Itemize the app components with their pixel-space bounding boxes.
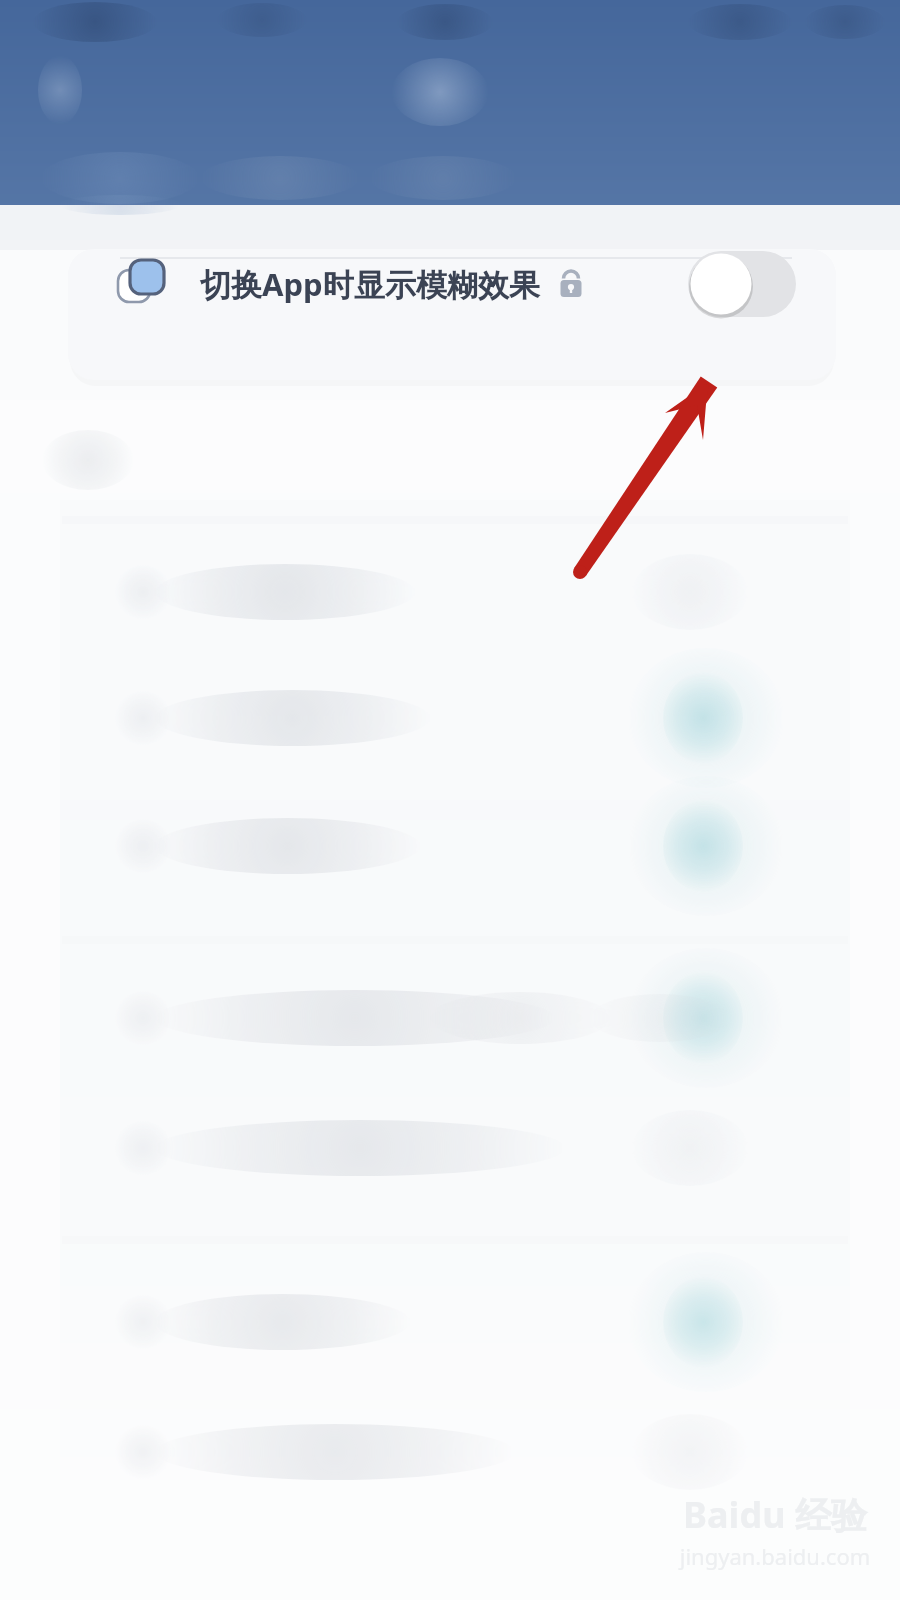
other: Locked bbox=[554, 267, 588, 301]
staticText: Baidu 经验 bbox=[660, 1490, 890, 1539]
other: App switch blur bbox=[112, 252, 176, 316]
button[interactable]: Show blur when switching apps, off bbox=[686, 249, 798, 319]
staticText: jingyan.baidu.com bbox=[660, 1541, 890, 1571]
button[interactable]: App switch blur bbox=[68, 249, 836, 380]
staticText: 切换App时显示模糊效果 bbox=[200, 263, 540, 305]
